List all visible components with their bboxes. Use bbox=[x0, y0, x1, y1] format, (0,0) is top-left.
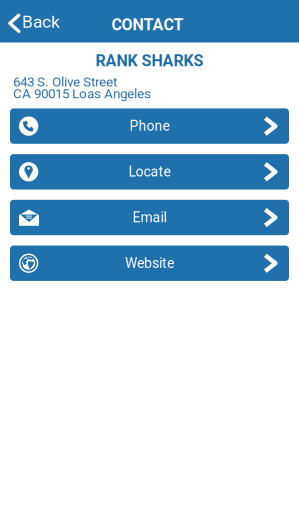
staticText: Phone bbox=[129, 118, 169, 134]
button[interactable]: Email bbox=[10, 200, 289, 235]
staticText: 643 S. Olive Street bbox=[13, 74, 117, 90]
staticText: Website bbox=[125, 255, 174, 271]
staticText: Email bbox=[132, 209, 166, 226]
button[interactable]: Back bbox=[0, 0, 70, 42]
staticText: RANK SHARKS bbox=[95, 51, 203, 70]
staticText: Back bbox=[22, 12, 60, 32]
staticText: CONTACT bbox=[111, 15, 183, 34]
button[interactable]: Phone bbox=[10, 108, 289, 144]
button[interactable]: Website bbox=[10, 245, 289, 281]
button[interactable]: Locate bbox=[10, 154, 289, 189]
staticText: Locate bbox=[128, 164, 170, 180]
staticText: CA 90015 Loas Angeles bbox=[13, 86, 151, 101]
